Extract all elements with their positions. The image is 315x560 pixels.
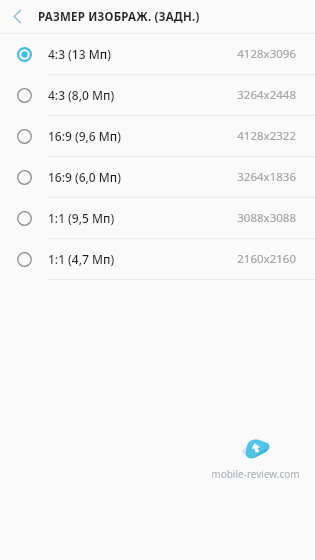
staticText: 4128x3096 — [237, 46, 296, 62]
staticText: РАЗМЕР ИЗОБРАЖ. (ЗАДН.) — [38, 9, 200, 25]
button[interactable]: 16:9 (9,6 Мп) — [0, 116, 315, 156]
button[interactable]: Back — [0, 0, 34, 33]
staticText: 4:3 (8,0 Мп) — [48, 87, 115, 103]
button[interactable]: 4:3 (8,0 Мп) — [0, 75, 315, 115]
staticText: 16:9 (6,0 Мп) — [48, 169, 122, 185]
staticText: 3088x3088 — [237, 210, 296, 226]
staticText: mobile-review.com — [211, 467, 300, 481]
staticText: 16:9 (9,6 Мп) — [48, 128, 122, 144]
staticText: 4:3 (13 Мп) — [48, 46, 111, 62]
staticText: 1:1 (4,7 Мп) — [48, 251, 115, 267]
button[interactable]: 1:1 (9,5 Мп) — [0, 198, 315, 238]
button[interactable]: 1:1 (4,7 Мп) — [0, 239, 315, 279]
button[interactable]: 16:9 (6,0 Мп) — [0, 157, 315, 197]
staticText: 1:1 (9,5 Мп) — [48, 210, 115, 226]
staticText: 2160x2160 — [237, 251, 296, 267]
staticText: 3264x2448 — [237, 87, 296, 103]
button[interactable]: 4:3 (13 Мп) — [0, 34, 315, 74]
staticText: 4128x2322 — [237, 128, 296, 144]
staticText: 3264x1836 — [237, 169, 296, 185]
